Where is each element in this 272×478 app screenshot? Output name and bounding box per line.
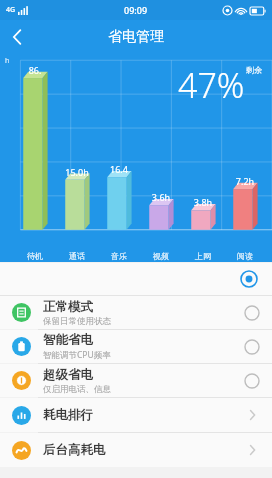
staticText: 正常模式	[43, 299, 93, 315]
staticText: 86.	[14, 64, 56, 76]
staticText: 视频	[153, 251, 169, 261]
staticText: 超级省电	[43, 367, 93, 383]
staticText: 09:09	[124, 4, 148, 16]
staticText: 通话	[69, 251, 85, 261]
staticText: 智能调节CPU频率	[43, 349, 111, 361]
staticText: 47%	[178, 62, 245, 108]
staticText: 智能省电	[43, 332, 93, 348]
staticText: 耗电排行	[43, 407, 93, 423]
button[interactable]: 后台高耗电	[0, 433, 272, 467]
button[interactable]: 智能省电	[0, 330, 272, 363]
staticText: 16.4	[98, 163, 140, 175]
staticText: h	[5, 56, 10, 66]
staticText: 阅读	[237, 251, 253, 261]
staticText: 保留日常使用状态	[43, 316, 111, 327]
staticText: 音乐	[111, 251, 127, 261]
staticText: 7.2h	[224, 175, 266, 187]
button[interactable]: 耗电排行	[0, 398, 272, 432]
button[interactable]: 正常模式	[0, 296, 272, 329]
staticText: 15.0h	[56, 166, 98, 178]
staticText: 后台高耗电	[43, 442, 106, 458]
staticText: 剩余	[246, 65, 262, 75]
button[interactable]: Back	[0, 20, 34, 54]
button[interactable]	[0, 263, 272, 295]
staticText: 上网	[195, 251, 211, 261]
staticText: 3.6h	[140, 191, 182, 203]
button[interactable]: 超级省电	[0, 364, 272, 397]
staticText: 仅启用电话、信息	[43, 384, 111, 395]
staticText: 省电管理	[108, 28, 164, 46]
staticText: 3.8h	[182, 196, 224, 208]
staticText: 待机	[27, 251, 43, 261]
staticText: 4G	[6, 5, 16, 15]
